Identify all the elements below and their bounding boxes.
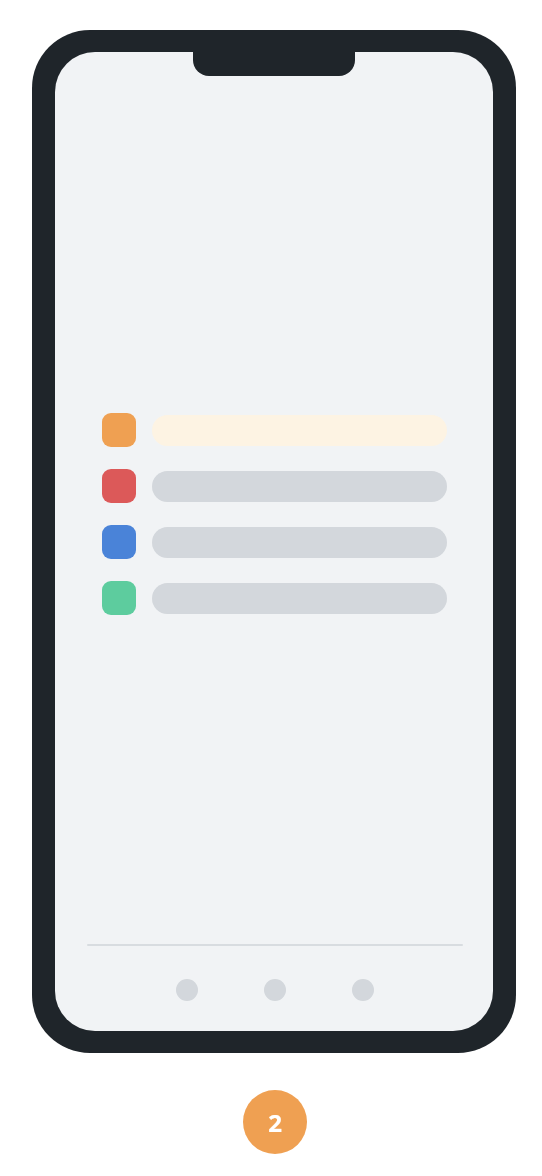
button[interactable]: Search xyxy=(256,971,294,1009)
button[interactable] xyxy=(102,469,447,503)
button[interactable]: Home xyxy=(168,971,206,1009)
button[interactable]: Profile xyxy=(344,971,382,1009)
button[interactable]: 2 xyxy=(243,1090,307,1154)
button[interactable] xyxy=(102,581,447,615)
staticText: 2 xyxy=(268,1106,282,1139)
button[interactable] xyxy=(102,525,447,559)
button[interactable] xyxy=(102,413,447,447)
